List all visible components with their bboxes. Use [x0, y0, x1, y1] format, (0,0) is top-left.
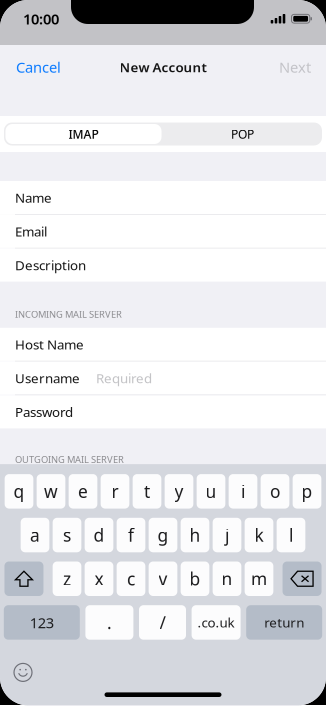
button[interactable]: c — [117, 561, 145, 596]
staticText: New Account — [119, 58, 206, 76]
staticText: l — [289, 523, 293, 546]
staticText: t — [144, 480, 150, 503]
staticText: b — [189, 567, 200, 590]
button[interactable]: r — [101, 474, 129, 509]
staticText: Password — [15, 403, 73, 421]
button[interactable]: Password — [0, 395, 326, 428]
staticText: Cancel — [16, 57, 61, 77]
button[interactable]: a — [21, 518, 49, 552]
button[interactable]: x — [85, 561, 113, 596]
staticText: p — [301, 480, 312, 503]
button[interactable]: f — [117, 518, 145, 552]
staticText: Username — [15, 369, 80, 387]
button[interactable]: j — [213, 518, 241, 552]
staticText: i — [241, 480, 245, 503]
button[interactable]: Next — [264, 48, 326, 86]
staticText: Description — [15, 256, 86, 274]
staticText: 10:00 — [23, 9, 59, 28]
staticText: q — [13, 480, 24, 503]
button[interactable]: Host Name — [0, 328, 326, 361]
button[interactable]: d — [85, 518, 113, 552]
button[interactable]: y — [165, 474, 193, 509]
staticText: Required — [96, 369, 152, 387]
staticText: u — [205, 480, 216, 503]
button[interactable]: Shift — [4, 561, 43, 596]
staticText: j — [225, 523, 229, 546]
staticText: IMAP — [68, 126, 98, 142]
button[interactable]: q — [5, 474, 33, 509]
staticText: a — [30, 523, 40, 546]
staticText: INCOMING MAIL SERVER — [15, 308, 122, 320]
staticText: return — [264, 614, 304, 631]
staticText: r — [111, 480, 118, 503]
staticText: Next — [279, 57, 311, 77]
button[interactable]: Username — [0, 362, 326, 395]
staticText: h — [189, 523, 200, 546]
button[interactable]: m — [245, 561, 273, 596]
staticText: z — [63, 567, 71, 590]
staticText: s — [63, 523, 71, 546]
staticText: d — [93, 523, 104, 546]
staticText: Name — [15, 189, 52, 206]
staticText: x — [94, 567, 103, 590]
button[interactable]: Description — [0, 249, 326, 282]
staticText: w — [44, 480, 58, 503]
staticText: Host Name — [15, 335, 84, 353]
button[interactable]: z — [53, 561, 81, 596]
staticText: k — [254, 523, 263, 546]
button[interactable]: v — [149, 561, 177, 596]
staticText: POP — [231, 126, 254, 142]
button[interactable]: / — [139, 605, 186, 640]
button[interactable]: n — [213, 561, 241, 596]
button[interactable]: Cancel — [0, 48, 77, 86]
button[interactable]: o — [261, 474, 289, 509]
staticText: 123 — [30, 613, 54, 632]
button[interactable]: IMAP — [4, 122, 163, 145]
staticText: e — [78, 480, 88, 503]
button[interactable]: . — [85, 605, 133, 640]
staticText: v — [158, 567, 167, 590]
button[interactable]: Delete — [282, 561, 321, 596]
staticText: y — [174, 480, 183, 503]
button[interactable]: Emoji — [7, 658, 39, 686]
button[interactable]: k — [245, 518, 273, 552]
staticText: . — [107, 611, 112, 634]
staticText: / — [159, 611, 165, 634]
button[interactable]: b — [181, 561, 209, 596]
button[interactable]: .co.uk — [192, 605, 241, 640]
button[interactable]: return — [246, 605, 322, 640]
button[interactable]: e — [69, 474, 97, 509]
button[interactable]: t — [133, 474, 161, 509]
button[interactable]: u — [197, 474, 225, 509]
staticText: OUTGOING MAIL SERVER — [15, 453, 124, 465]
button[interactable]: i — [229, 474, 257, 509]
button[interactable]: 123 — [4, 605, 80, 640]
staticText: n — [221, 567, 232, 590]
button[interactable]: Name — [0, 181, 326, 214]
staticText: c — [127, 567, 135, 590]
button[interactable]: l — [277, 518, 305, 552]
staticText: Email — [15, 222, 47, 240]
staticText: o — [270, 480, 280, 503]
staticText: g — [157, 523, 168, 546]
button[interactable]: h — [181, 518, 209, 552]
button[interactable]: Email — [0, 215, 326, 248]
button[interactable]: s — [53, 518, 81, 552]
staticText: f — [128, 523, 134, 546]
button[interactable]: POP — [163, 122, 322, 145]
staticText: m — [251, 567, 267, 590]
button[interactable]: g — [149, 518, 177, 552]
button[interactable]: p — [293, 474, 321, 509]
staticText: .co.uk — [198, 614, 235, 631]
button[interactable]: w — [37, 474, 65, 509]
